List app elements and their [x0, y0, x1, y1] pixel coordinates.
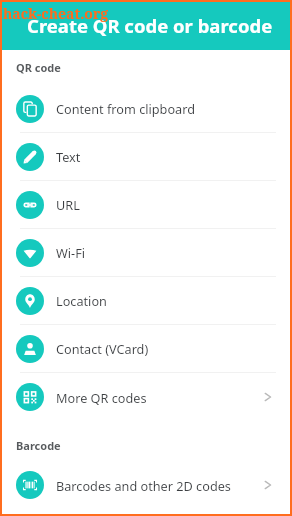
button[interactable]: Content from clipboard: [0, 85, 292, 133]
staticText: QR code: [16, 60, 61, 75]
staticText: Create QR code or barcode: [27, 13, 273, 38]
staticText: Barcode: [16, 438, 61, 453]
button[interactable]: Barcodes and other 2D codes: [0, 461, 292, 509]
staticText: Content from clipboard: [56, 100, 196, 117]
staticText: More QR codes: [56, 389, 147, 406]
staticText: hack-cheat.org: [3, 4, 109, 23]
staticText: Barcodes and other 2D codes: [56, 477, 231, 494]
button[interactable]: Contact (VCard): [0, 325, 292, 373]
staticText: Wi-Fi: [56, 244, 86, 261]
staticText: Contact (VCard): [56, 340, 149, 357]
button[interactable]: More QR codes: [0, 373, 292, 421]
staticText: Text: [56, 148, 81, 165]
staticText: URL: [56, 196, 80, 213]
button[interactable]: Create QR code or barcode: [0, 0, 292, 50]
button[interactable]: Text: [0, 133, 292, 181]
button[interactable]: Wi-Fi: [0, 229, 292, 277]
button[interactable]: URL: [0, 181, 292, 229]
staticText: Location: [56, 292, 107, 309]
button[interactable]: Location: [0, 277, 292, 325]
